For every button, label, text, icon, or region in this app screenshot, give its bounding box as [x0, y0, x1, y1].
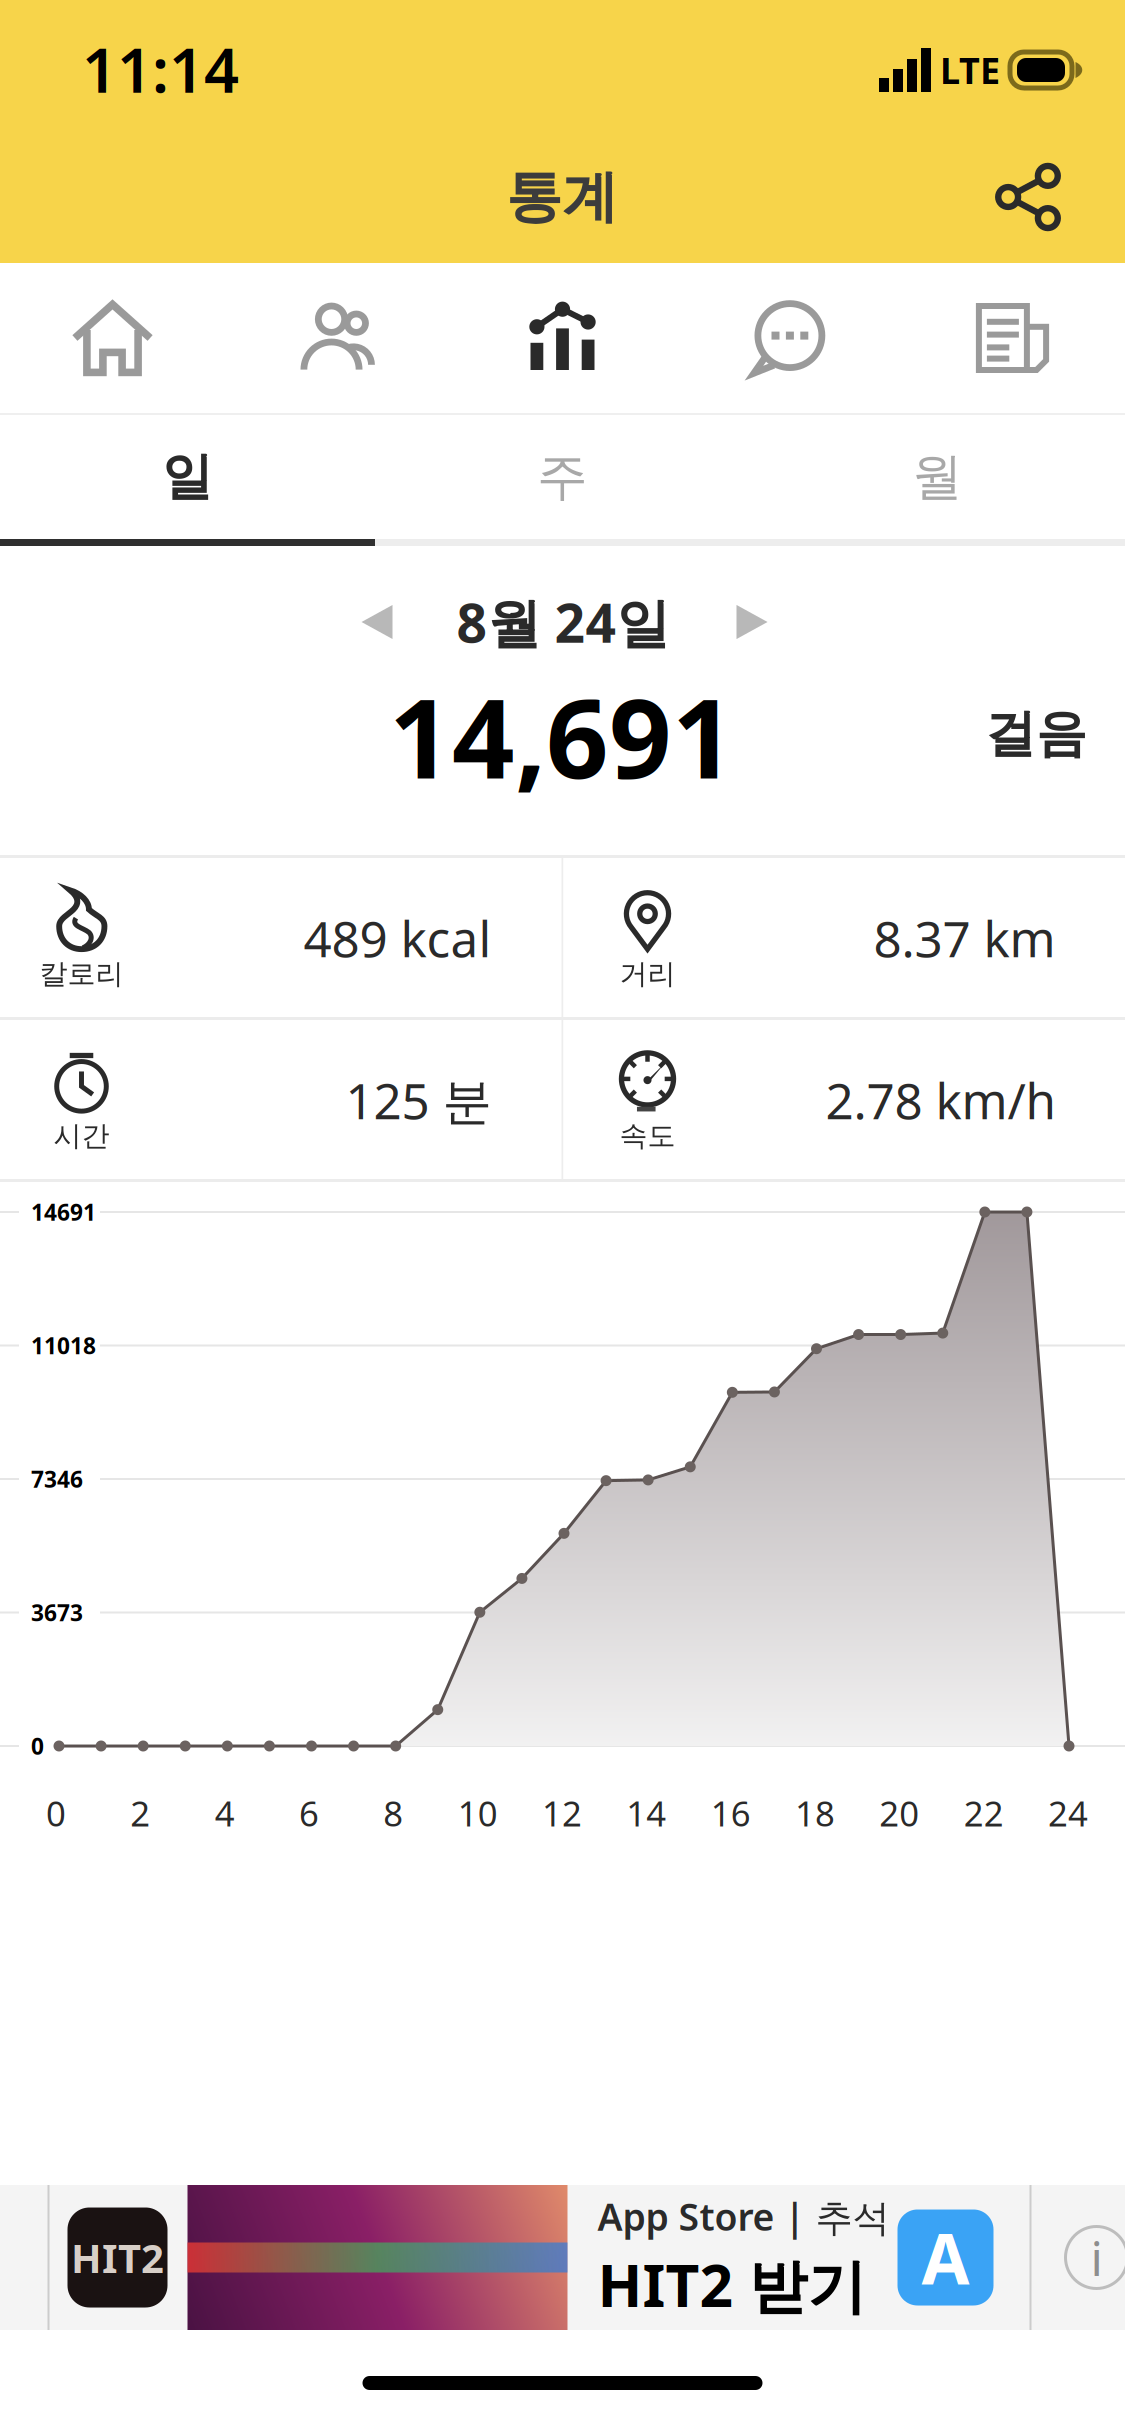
button[interactable]: News — [900, 263, 1125, 413]
staticText: 0 — [31, 1731, 44, 1761]
staticText: 11:14 — [82, 28, 239, 110]
staticText: 14 — [626, 1790, 666, 1836]
staticText: 주 — [537, 446, 588, 508]
button[interactable]: Statistics — [450, 263, 675, 413]
staticText: 14691 — [31, 1197, 96, 1227]
staticText: 시간 — [53, 1119, 109, 1153]
button[interactable]: HIT2 — [0, 2185, 1125, 2330]
button[interactable]: 주 — [375, 415, 750, 539]
staticText: 월 — [912, 446, 963, 508]
staticText: 125 분 — [345, 1067, 491, 1133]
staticText: 7346 — [31, 1464, 83, 1494]
staticText: 걸음 — [985, 703, 1087, 765]
button[interactable]: Next day — [704, 579, 800, 665]
staticText: 16 — [711, 1790, 751, 1836]
button[interactable]: 거리 — [563, 858, 1125, 1017]
staticText: App Store | 추석 — [597, 2191, 889, 2241]
staticText: 11018 — [31, 1330, 96, 1360]
staticText: HIT2 받기 — [597, 2245, 866, 2323]
button[interactable]: Chat — [675, 263, 900, 413]
staticText: 14,691 — [389, 663, 735, 809]
staticText: 24 — [1048, 1790, 1088, 1836]
staticText: 489 kcal — [303, 905, 491, 971]
staticText: 22 — [964, 1790, 1004, 1836]
button[interactable]: 일 — [0, 415, 375, 539]
button[interactable]: 칼로리 — [0, 858, 561, 1017]
staticText: 8 — [383, 1790, 403, 1836]
staticText: 통계 — [506, 163, 618, 231]
button[interactable]: Friends — [225, 263, 450, 413]
staticText: 2 — [130, 1790, 150, 1836]
staticText: 2.78 km/h — [825, 1067, 1055, 1133]
staticText: 6 — [299, 1790, 319, 1836]
staticText: i — [1090, 2226, 1102, 2289]
staticText: 8.37 km — [873, 905, 1055, 971]
staticText: 18 — [795, 1790, 835, 1836]
staticText: 8월 24일 — [456, 587, 669, 657]
button[interactable]: 월 — [750, 415, 1125, 539]
button[interactable]: Share — [963, 132, 1093, 262]
button[interactable]: 속도 — [563, 1020, 1125, 1179]
staticText: 20 — [879, 1790, 919, 1836]
staticText: A — [921, 2211, 969, 2304]
staticText: 12 — [542, 1790, 582, 1836]
staticText: 10 — [458, 1790, 498, 1836]
staticText: 3673 — [31, 1597, 83, 1627]
button[interactable]: 시간 — [0, 1020, 561, 1179]
button[interactable]: Home — [0, 263, 225, 413]
staticText: 거리 — [619, 957, 675, 991]
staticText: 4 — [215, 1790, 235, 1836]
staticText: 0 — [46, 1790, 66, 1836]
button[interactable]: Previous day — [329, 579, 425, 665]
staticText: 칼로리 — [39, 957, 123, 991]
staticText: LTE — [940, 46, 1000, 94]
staticText: 일 — [162, 446, 213, 508]
staticText: 속도 — [619, 1119, 675, 1153]
staticText: HIT2 — [71, 2231, 164, 2284]
